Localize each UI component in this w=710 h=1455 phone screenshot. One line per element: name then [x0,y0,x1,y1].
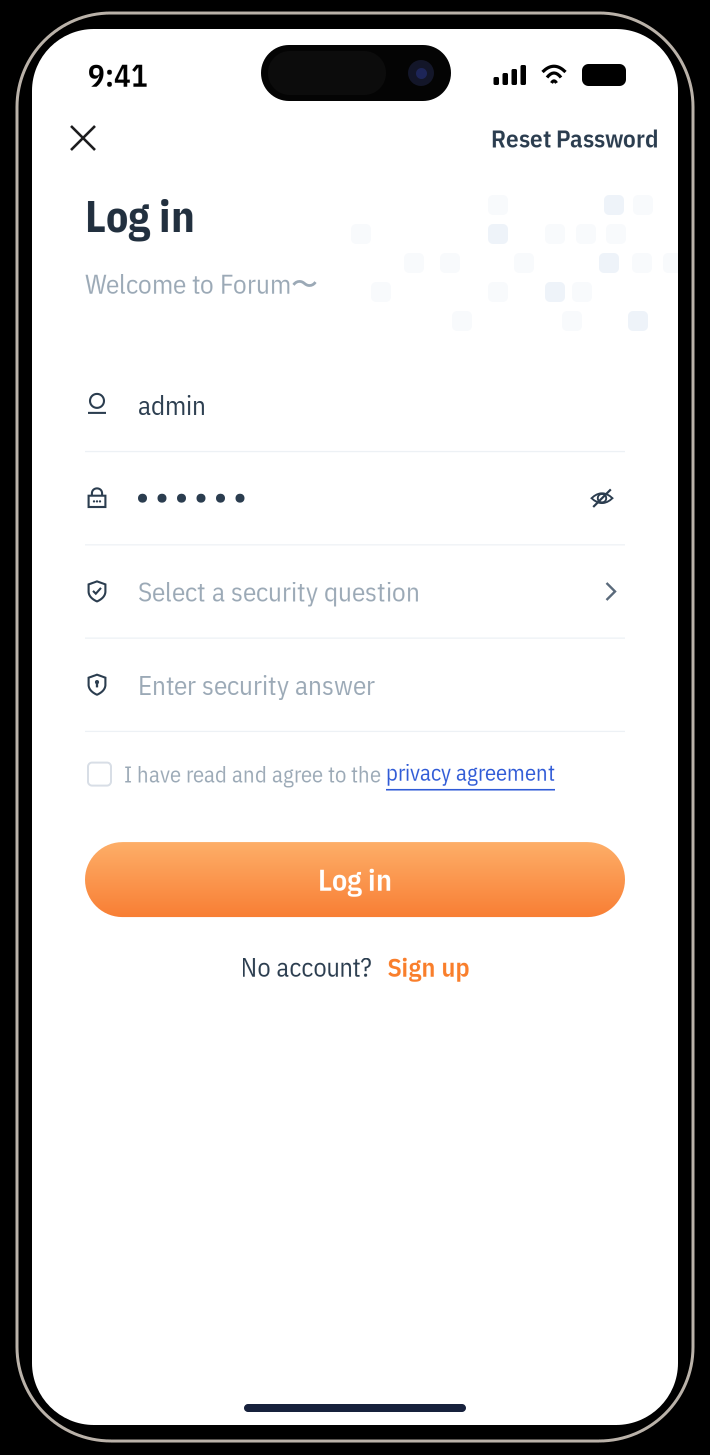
button[interactable]: privacy agreement [386,758,555,791]
button[interactable]: Sign up [387,950,469,984]
staticText: Sign up [387,950,469,984]
staticText: Log in [318,860,392,899]
staticText: Select a security question [138,574,420,609]
staticText: Reset Password [491,122,659,154]
staticText: Welcome to Forum〜 [85,266,318,302]
button[interactable]: Close [54,109,112,167]
button[interactable]: Select a security question [85,545,625,639]
staticText: I have read and agree to the [124,759,386,789]
staticText: privacy agreement [386,758,555,787]
button[interactable]: Log in [85,842,625,917]
staticText: admin [138,387,206,422]
staticText: Log in [85,187,195,244]
staticText: Enter security answer [138,667,375,702]
staticText: No account? [240,950,371,984]
staticText: 9:41 [88,55,148,95]
button[interactable]: Agree to privacy agreement [88,753,111,795]
button[interactable]: Reset Password [491,109,659,167]
button[interactable]: Show password [579,468,625,528]
